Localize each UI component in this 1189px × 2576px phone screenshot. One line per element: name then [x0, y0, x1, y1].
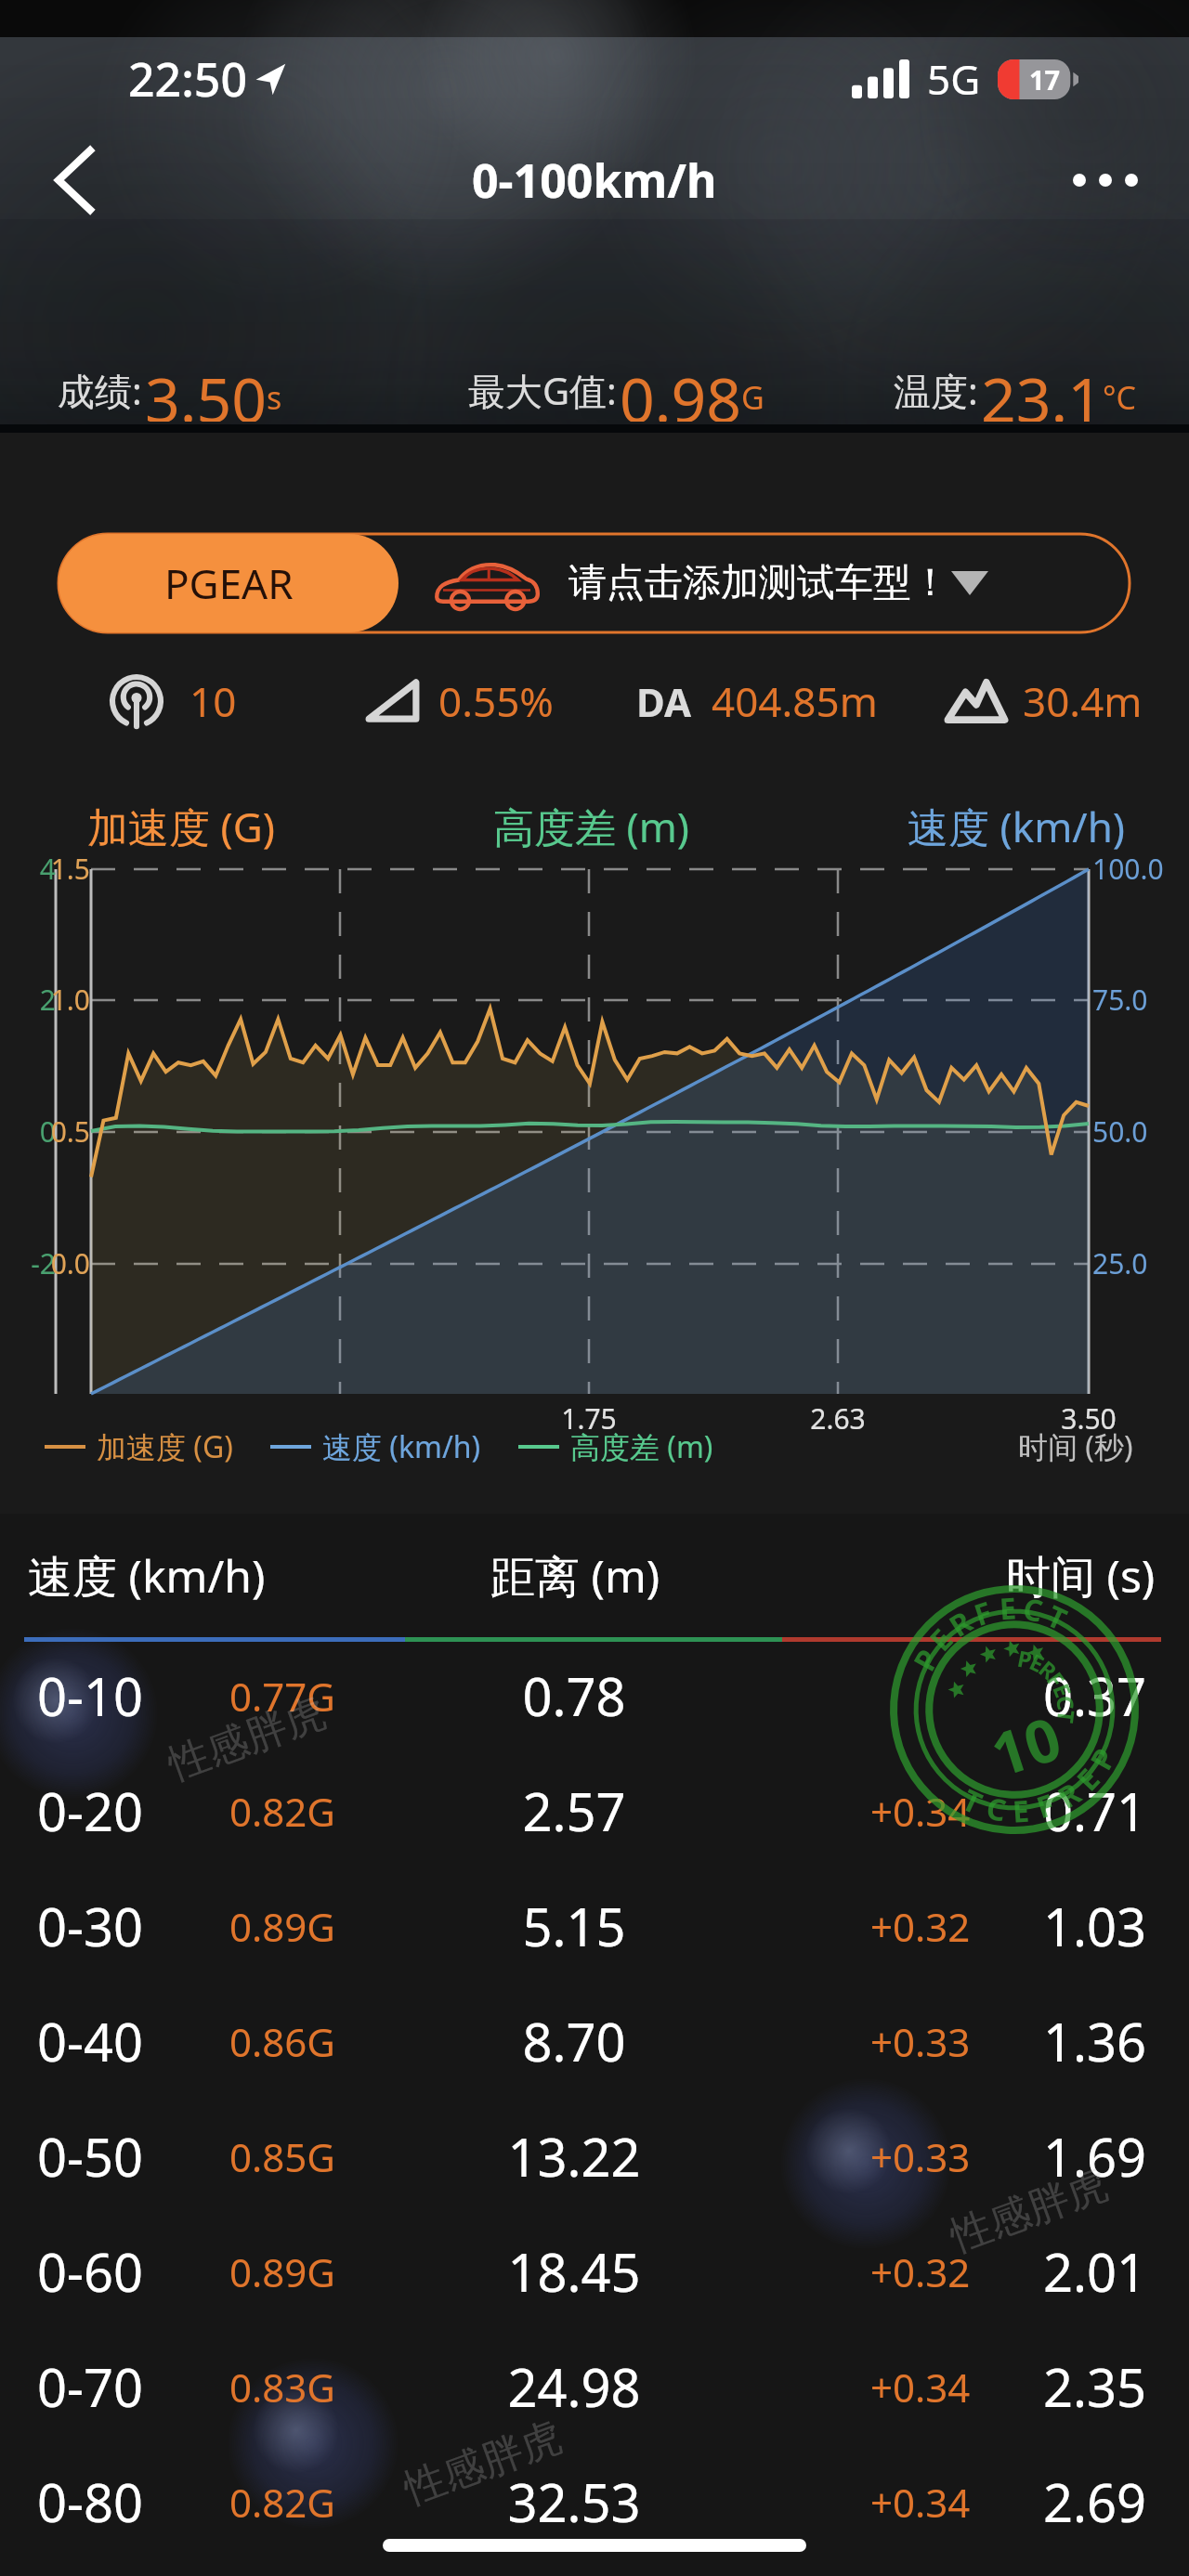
staticText: P: [1007, 1639, 1043, 1679]
staticText: 30.4m: [1023, 673, 1143, 729]
staticText: 0.98: [620, 357, 741, 422]
button[interactable]: 0-70: [0, 2329, 1189, 2444]
staticText: -2: [0, 1244, 56, 1282]
staticText: R: [1028, 1651, 1069, 1689]
staticText: 0-50: [37, 2121, 144, 2192]
staticText: 2.63: [764, 1399, 912, 1438]
staticText: 5.15: [342, 1891, 806, 1961]
staticText: 性感胖虎: [944, 2159, 1115, 2263]
staticText: 0.82G: [229, 2476, 335, 2529]
staticText: +0.32: [870, 2245, 971, 2298]
staticText: °C: [1103, 376, 1137, 419]
staticText: 0.85G: [229, 2130, 335, 2183]
staticText: 1.03: [1043, 1891, 1147, 1961]
staticText: T: [1031, 1591, 1083, 1644]
staticText: E: [989, 1583, 1027, 1633]
staticText: 0.78: [342, 1660, 806, 1731]
staticText: 2.69: [1043, 2466, 1147, 2537]
staticText: 0.71: [1043, 1776, 1147, 1846]
staticText: 0-80: [37, 2466, 144, 2537]
staticText: 2.57: [342, 1776, 806, 1846]
staticText: 32.53: [342, 2466, 806, 2537]
staticText: 1.0: [0, 981, 90, 1019]
button[interactable]: Back: [28, 129, 121, 231]
staticText: 0-30: [37, 1891, 144, 1961]
staticText: 1.75: [515, 1399, 663, 1438]
staticText: 2.35: [1043, 2351, 1147, 2422]
button[interactable]: 0-60: [0, 2214, 1189, 2329]
staticText: T: [1047, 1700, 1086, 1733]
button[interactable]: 0-30: [0, 1868, 1189, 1984]
staticText: 请点击添加测试车型！: [568, 559, 949, 607]
staticText: 10: [981, 1696, 1071, 1794]
staticText: 50.0: [1092, 1112, 1189, 1151]
staticText: 0.5: [0, 1112, 90, 1151]
button[interactable]: More options: [1059, 134, 1152, 227]
staticText: F: [1031, 1784, 1060, 1828]
staticText: 24.98: [342, 2351, 806, 2422]
staticText: 0.82G: [229, 1785, 335, 1838]
staticText: 0-70: [37, 2351, 144, 2422]
staticText: 高度差 (m): [493, 799, 689, 851]
staticText: 23.1: [981, 357, 1103, 422]
staticText: 75.0: [1092, 981, 1189, 1019]
staticText: 25.0: [1092, 1244, 1189, 1282]
staticText: 速度 (km/h): [908, 799, 1126, 851]
staticText: 4: [0, 850, 56, 888]
staticText: 8.70: [342, 2006, 806, 2076]
staticText: G: [741, 376, 764, 419]
staticText: 距离 (m): [490, 1545, 660, 1607]
staticText: 0.86G: [229, 2015, 335, 2068]
staticText: 0-40: [37, 2006, 144, 2076]
staticText: 温度:: [894, 365, 978, 416]
staticText: 最大G值:: [468, 365, 617, 416]
staticText: 时间 (s): [1006, 1545, 1156, 1607]
staticText: F: [969, 1591, 997, 1635]
staticText: +0.32: [870, 1900, 971, 1953]
button[interactable]: 0-40: [0, 1984, 1189, 2099]
staticText: R: [940, 1598, 981, 1649]
staticText: 0.55%: [438, 673, 554, 729]
staticText: 100.0: [1092, 850, 1189, 888]
button[interactable]: 0-50: [0, 2099, 1189, 2214]
staticText: +0.34: [870, 1785, 971, 1838]
staticText: R: [1048, 1770, 1090, 1821]
staticText: 3.50: [1014, 1399, 1163, 1438]
staticText: E: [918, 1614, 964, 1666]
staticText: +0.34: [870, 2476, 971, 2529]
staticText: 速度 (km/h): [322, 1426, 481, 1467]
button[interactable]: 0-20: [0, 1753, 1189, 1868]
staticText: F: [1037, 1664, 1076, 1695]
button[interactable]: 0-80: [0, 2444, 1189, 2559]
staticText: 13.22: [342, 2121, 806, 2192]
staticText: 0: [0, 1112, 56, 1151]
staticText: 0-60: [37, 2236, 144, 2307]
staticText: 性感胖虎: [397, 2411, 569, 2515]
staticText: 速度 (km/h): [28, 1545, 266, 1607]
staticText: C: [1047, 1688, 1085, 1718]
staticText: PGEAR: [164, 555, 294, 611]
staticText: 404.85m: [712, 673, 878, 729]
staticText: 高度差 (m): [570, 1426, 713, 1467]
staticText: E: [1018, 1643, 1057, 1682]
staticText: 1.5: [0, 850, 90, 888]
staticText: 0-20: [37, 1776, 144, 1846]
button[interactable]: 0-10: [0, 1638, 1189, 1753]
staticText: DA: [636, 675, 691, 728]
staticText: 加速度 (G): [97, 1426, 233, 1467]
staticText: 时间 (秒): [1018, 1426, 1133, 1467]
staticText: 加速度 (G): [87, 799, 275, 851]
staticText: 0.37: [1043, 1660, 1147, 1731]
staticText: 0-100km/h: [472, 149, 717, 212]
staticText: 0.89G: [229, 1900, 335, 1953]
staticText: 18.45: [342, 2236, 806, 2307]
button[interactable]: PGEAR: [59, 534, 1130, 632]
staticText: 1.69: [1043, 2121, 1147, 2192]
staticText: s: [267, 376, 282, 419]
staticText: 0-10: [37, 1660, 144, 1731]
staticText: 2: [0, 981, 56, 1019]
staticText: 2.01: [1043, 2236, 1147, 2307]
staticText: +0.33: [870, 2015, 971, 2068]
staticText: 性感胖虎: [162, 1687, 333, 1791]
staticText: E: [1046, 1678, 1080, 1702]
